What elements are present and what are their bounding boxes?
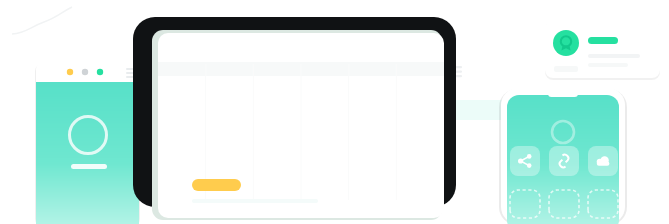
button[interactable]: Share (510, 146, 540, 176)
button[interactable]: Primary action (192, 179, 241, 191)
button[interactable]: Cloud upload (588, 146, 618, 176)
button[interactable]: Copy link (549, 146, 579, 176)
button[interactable]: Profile (553, 30, 579, 56)
